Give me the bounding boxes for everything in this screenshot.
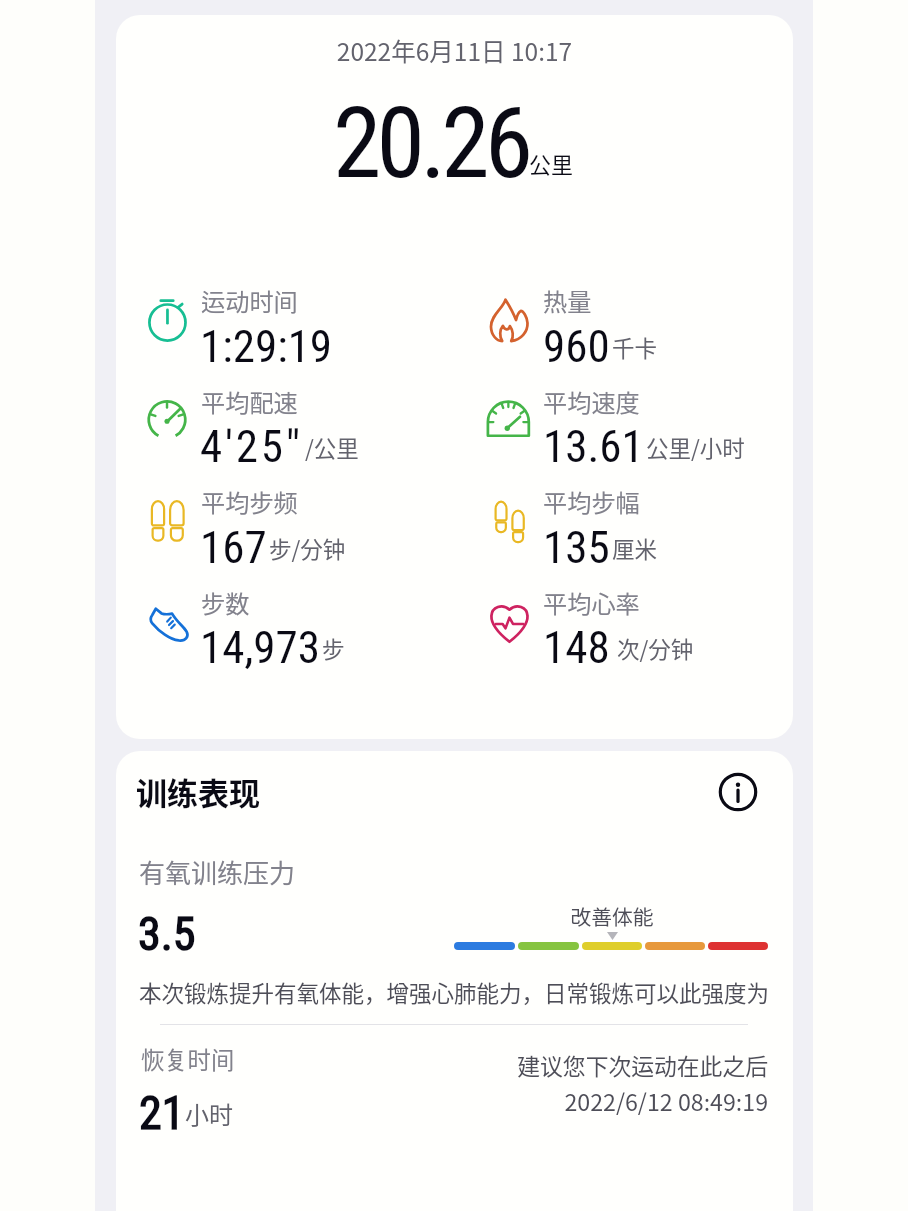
button[interactable]: 2022年6月11日 10:17 [116, 15, 793, 739]
staticText: 建议您下次运动在此之后 [116, 1049, 768, 1082]
button[interactable] [483, 271, 783, 363]
staticText: 1:29:19 [200, 320, 333, 373]
staticText: 2022/6/12 08:49:19 [116, 1084, 768, 1118]
staticText: 厘米 [612, 532, 658, 565]
staticText: 21 [139, 1086, 185, 1140]
staticText: 步/分钟 [269, 532, 346, 565]
staticText: 恢复时间 [141, 1042, 235, 1076]
staticText: 有氧训练压力 [139, 853, 296, 891]
staticText: /公里 [305, 431, 359, 464]
staticText: 平均心率 [543, 585, 640, 620]
staticText: 167 [200, 521, 267, 574]
staticText: 13.61 [543, 420, 644, 473]
staticText: 步数 [201, 585, 250, 620]
staticText: 平均速度 [543, 384, 640, 419]
button[interactable] [141, 271, 483, 363]
staticText: 平均配速 [201, 384, 298, 419]
staticText: 本次锻炼提升有氧体能，增强心肺能力，日常锻炼可以此强度为 [139, 976, 770, 1009]
button[interactable] [141, 472, 483, 564]
button[interactable]: Information [712, 766, 764, 818]
staticText: 热量 [543, 283, 592, 318]
staticText: 148 [543, 621, 610, 674]
staticText: 公里/小时 [646, 431, 745, 464]
staticText: 千卡 [612, 331, 658, 364]
staticText: 平均步幅 [543, 484, 640, 519]
staticText: 公里 [529, 147, 574, 179]
staticText: 步 [322, 632, 345, 665]
staticText: 训练表现 [136, 769, 260, 814]
staticText: 2022年6月11日 10:17 [116, 33, 793, 68]
staticText: 14,973 [200, 621, 320, 674]
button[interactable] [483, 372, 783, 464]
staticText: 运动时间 [201, 283, 298, 318]
staticText: 960 [543, 320, 610, 373]
button[interactable] [141, 573, 483, 665]
staticText: 20.26 [333, 86, 529, 201]
staticText: 小时 [185, 1096, 233, 1131]
staticText: 4'25" [200, 420, 303, 473]
staticText: 3.5 [138, 907, 196, 961]
staticText: 次/分钟 [612, 632, 694, 665]
button[interactable] [141, 372, 483, 464]
button[interactable] [483, 573, 783, 665]
staticText: 平均步频 [201, 484, 298, 519]
staticText: 135 [543, 521, 610, 574]
button[interactable] [483, 472, 783, 564]
staticText: 改善体能 [456, 901, 768, 931]
